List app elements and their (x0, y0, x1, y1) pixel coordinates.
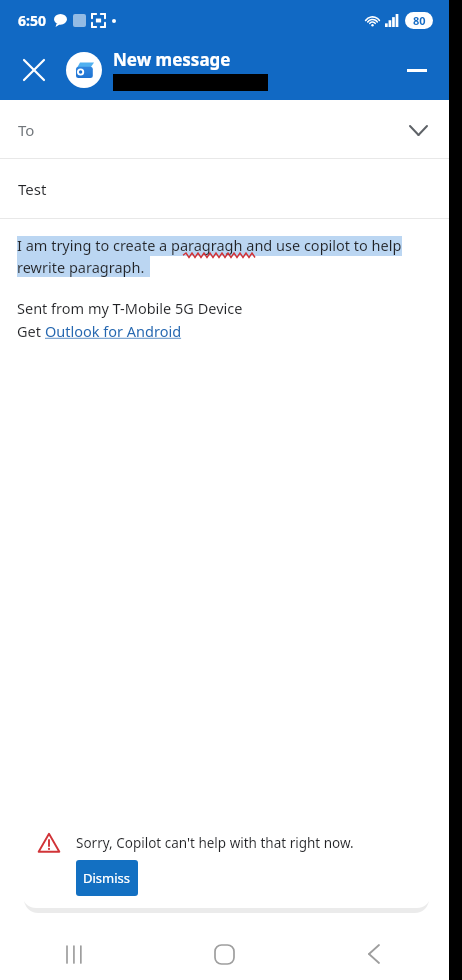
button[interactable]: Recent apps (0, 928, 149, 980)
button[interactable]: Account (66, 52, 102, 88)
button[interactable]: Close (14, 50, 54, 90)
button[interactable]: To (0, 100, 449, 159)
button[interactable]: Minimize (397, 50, 437, 90)
staticText: Outlook for Android (45, 321, 182, 341)
staticText: Get (17, 321, 45, 341)
staticText: Sent from my T-Mobile 5G Device (17, 298, 243, 318)
button[interactable]: Test (0, 159, 449, 219)
button[interactable]: Dismiss (76, 860, 138, 896)
staticText: To (18, 120, 35, 140)
staticText: rewrite paragraph. (17, 257, 145, 277)
staticText: Sorry, Copilot can't help with that righ… (76, 834, 354, 852)
other: Warning (38, 832, 60, 854)
staticText: 80 (413, 13, 426, 28)
staticText: 6:50 (18, 11, 46, 30)
button[interactable]: Home (149, 928, 299, 980)
button[interactable]: Back (299, 928, 449, 980)
staticText: Test (18, 179, 47, 199)
other: Expand recipients (405, 117, 431, 143)
button[interactable]: Outlook for Android (45, 321, 182, 341)
staticText: I am trying to create a paragragh and us… (17, 235, 402, 255)
staticText: New message (113, 48, 231, 71)
staticText: Dismiss (83, 869, 131, 887)
